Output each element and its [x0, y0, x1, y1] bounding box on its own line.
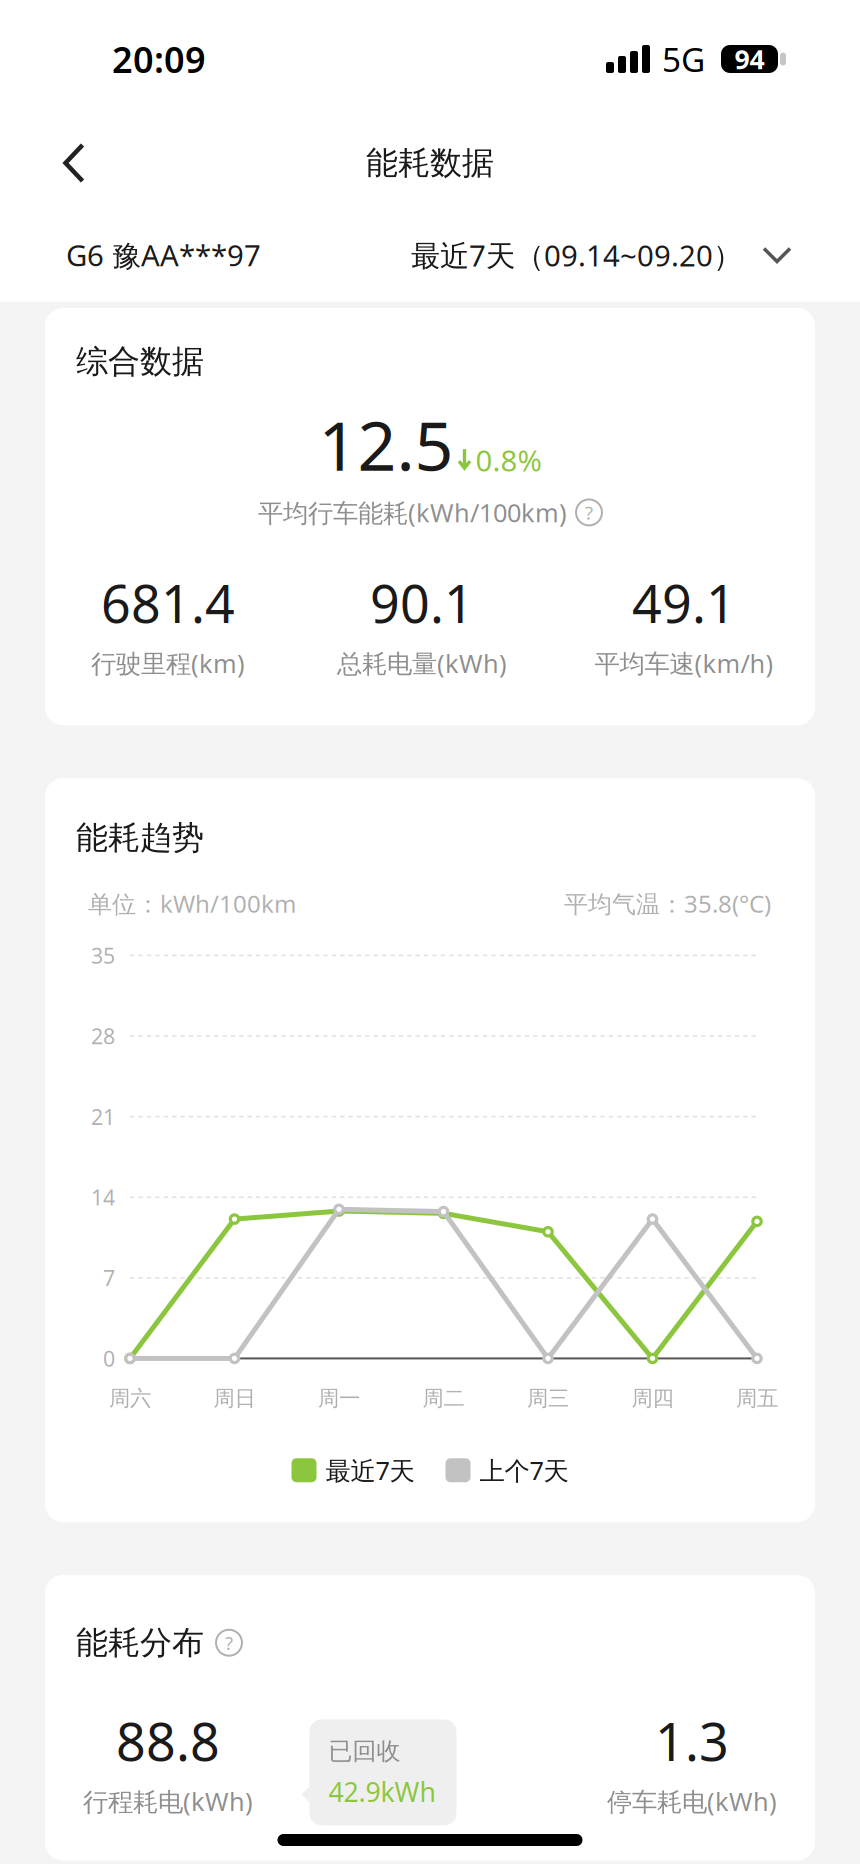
staticText: 14: [91, 1183, 115, 1211]
staticText: 周一: [318, 1385, 360, 1411]
staticText: 能耗数据: [366, 143, 494, 183]
staticText: 周六: [109, 1385, 151, 1411]
staticText: 88.8: [116, 1706, 220, 1775]
staticText: 最近7天（09.14~09.20）: [411, 235, 742, 274]
staticText: 综合数据: [76, 342, 204, 381]
staticText: 能耗分布: [76, 1623, 204, 1662]
staticText: 行驶里程(km): [91, 646, 245, 680]
staticText: G6 豫AA***97: [66, 235, 261, 274]
staticText: 上个7天: [479, 1453, 568, 1487]
staticText: ?: [585, 500, 593, 525]
staticText: 周四: [631, 1385, 673, 1411]
staticText: 平均气温：35.8(°C): [564, 888, 771, 919]
staticText: 平均车速(km/h): [594, 646, 773, 680]
staticText: 周二: [422, 1385, 464, 1411]
staticText: 平均行车能耗(kWh/100km): [258, 496, 567, 529]
staticText: 42.9kWh: [328, 1774, 435, 1809]
staticText: 49.1: [632, 568, 736, 637]
staticText: 0.8%: [475, 441, 541, 480]
staticText: 行程耗电(kWh): [83, 1784, 253, 1818]
button[interactable]: G6 豫AA***97: [66, 235, 261, 274]
staticText: 已回收: [328, 1736, 400, 1766]
staticText: 周三: [527, 1385, 569, 1411]
staticText: 28: [91, 1022, 115, 1050]
staticText: ?: [225, 1630, 233, 1655]
staticText: 20:09: [112, 35, 206, 83]
staticText: 单位：kWh/100km: [88, 888, 296, 919]
staticText: 周五: [736, 1385, 778, 1411]
staticText: 7: [103, 1264, 115, 1292]
staticText: 12.5: [318, 399, 453, 490]
staticText: 21: [91, 1102, 115, 1131]
staticText: 94: [734, 41, 764, 77]
staticText: 能耗趋势: [76, 818, 204, 857]
staticText: 1.3: [655, 1706, 729, 1775]
staticText: 周日: [213, 1385, 255, 1411]
staticText: 停车耗电(kWh): [607, 1784, 777, 1818]
staticText: 0: [103, 1344, 115, 1373]
button[interactable]: Back: [38, 127, 110, 199]
staticText: 681.4: [101, 568, 235, 637]
button[interactable]: 最近7天（09.14~09.20）: [411, 235, 792, 274]
staticText: 5G: [662, 37, 705, 81]
staticText: 35: [91, 941, 115, 970]
staticText: 最近7天: [325, 1453, 414, 1487]
staticText: 90.1: [370, 568, 474, 637]
staticText: 总耗电量(kWh): [337, 646, 507, 680]
